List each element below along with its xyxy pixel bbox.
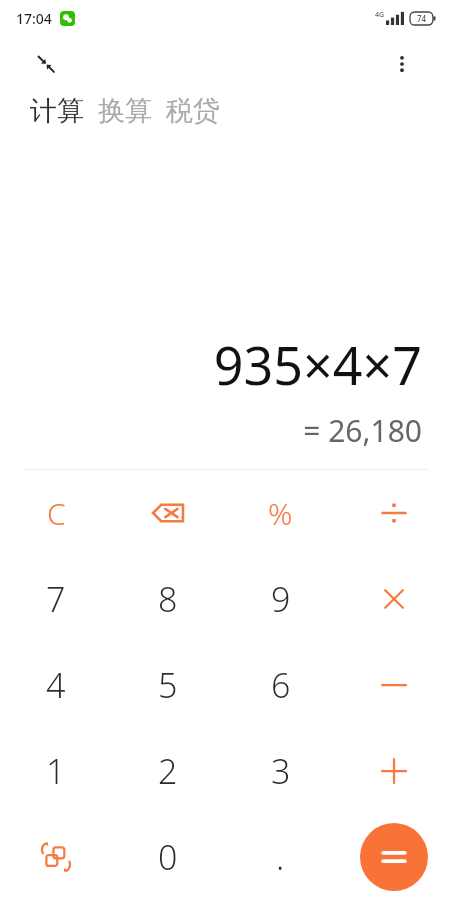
button[interactable]: 0: [112, 814, 224, 900]
button[interactable]: 税贷: [166, 94, 222, 128]
staticText: 8: [158, 576, 178, 622]
button[interactable]: More options: [382, 44, 422, 84]
staticText: C: [47, 493, 66, 534]
staticText: 4G: [375, 10, 385, 20]
button[interactable]: Plus: [337, 728, 450, 814]
button[interactable]: Backspace: [112, 470, 224, 556]
button[interactable]: 换算: [98, 94, 154, 128]
button[interactable]: %: [224, 470, 337, 556]
button[interactable]: Convert units: [0, 814, 112, 900]
staticText: 6: [271, 662, 291, 708]
staticText: 2: [158, 748, 178, 794]
staticText: %: [268, 493, 293, 534]
staticText: .: [276, 834, 285, 880]
button[interactable]: 8: [112, 556, 224, 642]
staticText: 计算: [30, 94, 84, 128]
button[interactable]: Equals: [337, 814, 450, 900]
button[interactable]: C: [0, 470, 112, 556]
staticText: 3: [271, 748, 291, 794]
button[interactable]: 9: [224, 556, 337, 642]
button[interactable]: 4: [0, 642, 112, 728]
staticText: 935×4×7: [213, 329, 422, 400]
staticText: 74: [417, 13, 427, 24]
button[interactable]: Divide: [337, 470, 450, 556]
staticText: 税贷: [166, 94, 220, 128]
staticText: = 26,180: [303, 410, 422, 451]
staticText: 1: [46, 748, 66, 794]
button[interactable]: 3: [224, 728, 337, 814]
staticText: 5: [158, 662, 178, 708]
button[interactable]: Multiply: [337, 556, 450, 642]
button[interactable]: 1: [0, 728, 112, 814]
staticText: 9: [271, 576, 291, 622]
button[interactable]: 2: [112, 728, 224, 814]
staticText: 17:04: [16, 9, 52, 28]
button[interactable]: .: [224, 814, 337, 900]
staticText: 换算: [98, 94, 152, 128]
staticText: 0: [158, 834, 178, 880]
button[interactable]: Collapse: [26, 44, 66, 84]
button[interactable]: 5: [112, 642, 224, 728]
button[interactable]: 6: [224, 642, 337, 728]
staticText: 7: [46, 576, 66, 622]
staticText: 4: [46, 662, 66, 708]
button[interactable]: 计算: [30, 94, 86, 128]
button[interactable]: Minus: [337, 642, 450, 728]
button[interactable]: 7: [0, 556, 112, 642]
